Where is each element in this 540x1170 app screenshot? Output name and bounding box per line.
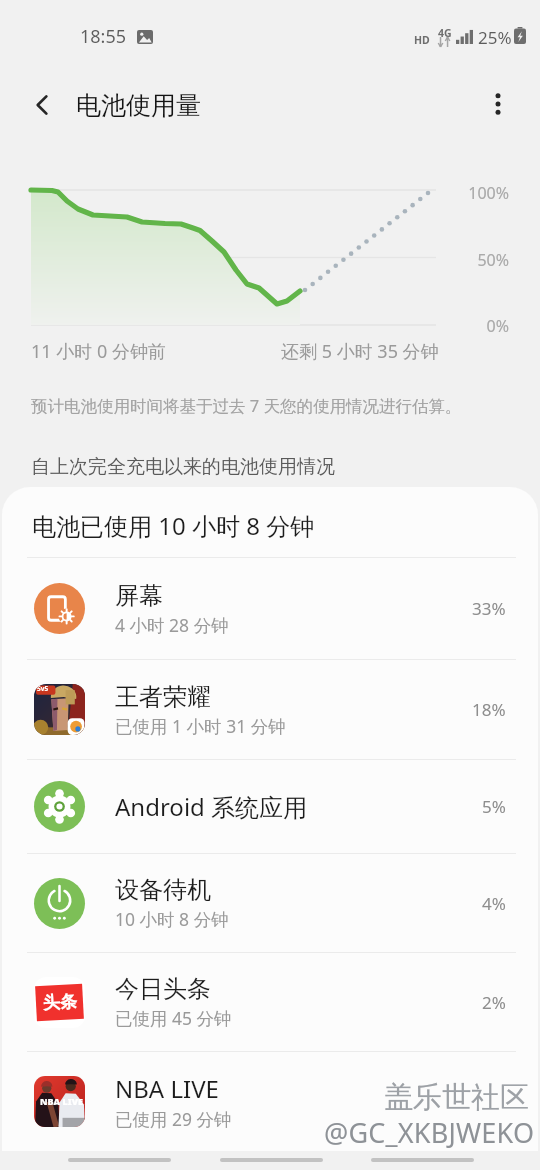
staticText: 25% — [478, 26, 512, 49]
staticText: 还剩 5 小时 35 分钟 — [281, 339, 439, 364]
button[interactable]: 5v5 — [2, 660, 538, 759]
staticText: 2% — [482, 991, 506, 1014]
staticText: 自上次完全充电以来的电池使用情况 — [31, 455, 335, 479]
button[interactable]: 屏幕 — [2, 558, 538, 659]
staticText: 已使用 45 分钟 — [115, 1006, 232, 1030]
button[interactable]: More options — [472, 78, 524, 130]
staticText: 已使用 1 小时 31 分钟 — [115, 714, 286, 738]
staticText: 头条 — [42, 991, 78, 1014]
staticText: NBA LIVE — [40, 1095, 83, 1107]
staticText: 4 小时 28 分钟 — [115, 613, 229, 637]
button[interactable]: Back — [16, 78, 70, 132]
staticText: 今日头条 — [115, 974, 211, 1004]
staticText: Android 系统应用 — [115, 790, 308, 823]
button[interactable]: 设备待机 — [2, 854, 538, 952]
staticText: 50% — [409, 249, 509, 271]
staticText: 11 小时 0 分钟前 — [31, 339, 166, 364]
staticText: 电池已使用 10 小时 8 分钟 — [32, 509, 315, 542]
button[interactable]: NBA LIVE — [2, 1052, 538, 1150]
staticText: HD — [414, 33, 430, 47]
staticText: @GC_XKBJWEKO — [324, 1114, 535, 1151]
staticText: 0% — [409, 315, 509, 337]
staticText: 4% — [482, 892, 506, 915]
staticText: 5v5 — [37, 684, 49, 693]
staticText: 已使用 29 分钟 — [115, 1107, 232, 1131]
staticText: 10 小时 8 分钟 — [115, 907, 229, 931]
staticText: 18% — [472, 698, 506, 721]
staticText: 屏幕 — [115, 581, 163, 611]
staticText: 18:55 — [80, 24, 127, 49]
staticText: 33% — [472, 597, 506, 620]
staticText: 预计电池使用时间将基于过去 7 天您的使用情况进行估算。 — [31, 394, 462, 417]
staticText: 设备待机 — [115, 875, 211, 905]
staticText: 盖乐世社区 — [384, 1079, 529, 1116]
button[interactable]: 头条 — [2, 953, 538, 1051]
staticText: 5% — [482, 795, 506, 818]
staticText: NBA LIVE — [115, 1072, 219, 1105]
button[interactable]: Android 系统应用 — [2, 760, 538, 853]
staticText: 4G — [438, 26, 452, 40]
staticText: 王者荣耀 — [115, 682, 211, 712]
staticText: 电池使用量 — [76, 90, 201, 121]
staticText: 100% — [409, 182, 509, 204]
